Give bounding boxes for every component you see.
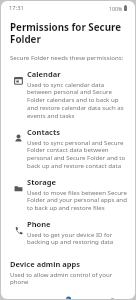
staticText: Used to sync calendar data between perso… bbox=[27, 80, 127, 120]
staticText: Used to allow admin control of your phon… bbox=[10, 270, 127, 286]
staticText: Permissions for Secure Folder bbox=[10, 21, 126, 46]
staticText: Contacts bbox=[27, 127, 61, 137]
staticText: 17:31 bbox=[9, 4, 24, 12]
staticText: Storage bbox=[27, 177, 56, 187]
staticText: Used to sync personal and Secure Folder … bbox=[27, 138, 127, 170]
staticText: Used to move files between Secure Folder… bbox=[27, 188, 127, 212]
staticText: Used to get your device ID for backing u… bbox=[27, 230, 127, 246]
button[interactable]: Appear on top bbox=[1, 297, 135, 299]
staticText: Device admin apps bbox=[10, 259, 80, 269]
button[interactable]: Phone bbox=[1, 217, 135, 248]
staticText: 100% bbox=[109, 5, 123, 12]
button[interactable]: Calendar bbox=[1, 67, 135, 122]
staticText: Calendar bbox=[27, 69, 61, 79]
staticText: Phone bbox=[27, 219, 51, 229]
button[interactable]: Contacts bbox=[1, 125, 135, 172]
button[interactable]: Storage bbox=[1, 175, 135, 214]
button[interactable]: Device admin apps bbox=[1, 257, 135, 288]
staticText: Secure Folder needs these permissions: bbox=[10, 53, 124, 61]
